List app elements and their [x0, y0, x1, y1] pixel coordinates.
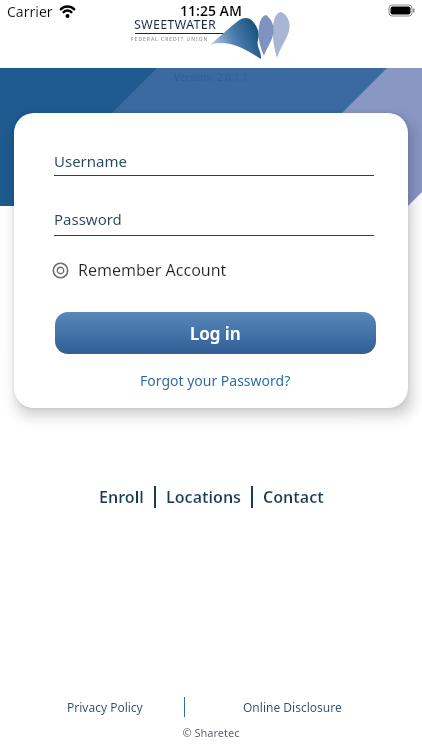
staticText: © Sharetec — [0, 725, 422, 740]
staticText: Username — [54, 151, 127, 171]
staticText: 11:25 AM — [0, 1, 422, 20]
staticText: Version: 2.0.1.1 — [0, 70, 422, 84]
button[interactable]: Username — [50, 149, 380, 181]
button[interactable]: Enroll — [95, 486, 148, 508]
button[interactable]: Forgot your Password? — [55, 367, 376, 393]
button[interactable]: Contact — [259, 486, 328, 508]
staticText: Log in — [190, 322, 241, 345]
button[interactable]: Online Disclosure — [243, 699, 342, 715]
staticText: Carrier — [7, 2, 53, 21]
staticText: FEDERAL CREDIT UNION — [131, 36, 209, 43]
button[interactable]: Password — [50, 207, 380, 239]
button[interactable]: Remember Account — [52, 259, 227, 281]
button[interactable]: Privacy Policy — [67, 699, 143, 715]
staticText: Password — [54, 209, 122, 229]
button[interactable]: Log in — [55, 312, 376, 354]
button[interactable]: Locations — [162, 486, 245, 508]
staticText: SWEETWATER — [134, 16, 217, 33]
staticText: Forgot your Password? — [140, 371, 291, 390]
staticText: Remember Account — [78, 259, 227, 281]
